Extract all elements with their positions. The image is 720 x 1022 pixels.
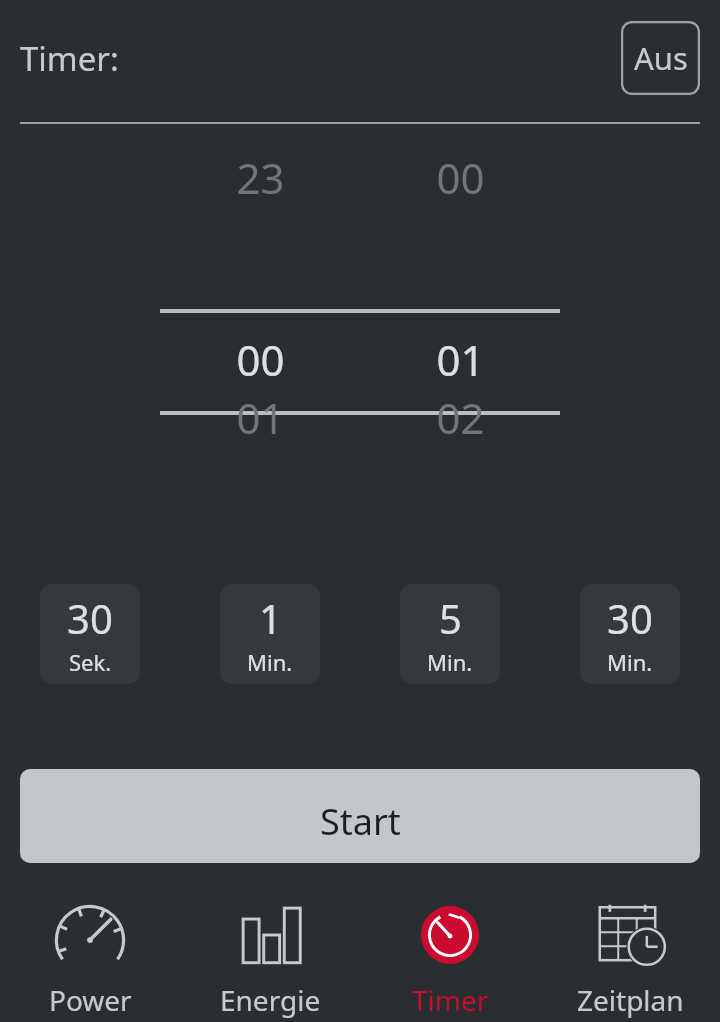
staticText: 02 [436, 389, 485, 446]
button[interactable]: 30 [580, 584, 680, 684]
button[interactable]: 30 [40, 584, 140, 684]
staticText: 01 [436, 331, 485, 388]
button[interactable]: 00 [360, 124, 560, 524]
staticText: Min. [607, 647, 653, 677]
staticText: Timer: [20, 36, 119, 81]
staticText: Timer [412, 981, 489, 1019]
staticText: Sek. [69, 647, 112, 677]
button[interactable]: Zeitplan [540, 875, 720, 1019]
button[interactable]: Aus [621, 21, 700, 95]
button[interactable]: 1 [220, 584, 320, 684]
staticText: 00 [236, 331, 285, 388]
staticText: Zeitplan [577, 981, 684, 1019]
staticText: Min. [427, 647, 473, 677]
button[interactable]: 23 [160, 124, 360, 524]
button[interactable]: Timer [360, 875, 540, 1019]
staticText: 23 [236, 149, 285, 206]
staticText: Aus [634, 37, 688, 79]
staticText: 01 [236, 389, 285, 446]
staticText: Start [320, 797, 401, 846]
staticText: 5 [439, 591, 462, 645]
staticText: 30 [67, 591, 113, 645]
staticText: Power [49, 981, 132, 1019]
button[interactable]: Start [20, 769, 700, 863]
button[interactable]: Power [0, 875, 180, 1019]
staticText: 00 [436, 149, 485, 206]
button[interactable]: Energie [180, 875, 360, 1019]
staticText: 30 [607, 591, 653, 645]
staticText: Energie [220, 981, 321, 1019]
staticText: 1 [259, 591, 282, 645]
staticText: Min. [247, 647, 293, 677]
button[interactable]: 5 [400, 584, 500, 684]
